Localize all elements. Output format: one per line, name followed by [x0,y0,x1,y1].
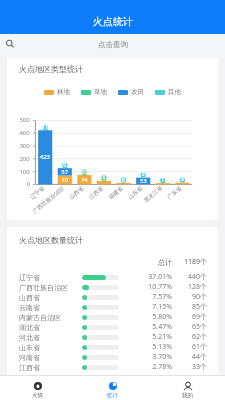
staticText: 统计 [107,392,118,399]
staticText: 点击查询 [98,40,128,49]
staticText: 61个 [179,342,207,352]
staticText: 农田 [131,88,144,96]
button[interactable]: 辽宁省 [7,272,218,282]
staticText: 7.15% [144,302,172,312]
button[interactable]: 河南省 [7,352,218,362]
staticText: 5.80% [144,312,172,322]
staticText: 1189个 [179,257,207,267]
button[interactable]: 河北省 [7,332,218,342]
button[interactable]: 火情 [0,376,75,400]
staticText: 10.77% [144,282,172,292]
button[interactable]: 搜索 [0,34,225,54]
staticText: 火情 [32,392,43,399]
staticText: 90个 [179,292,207,302]
staticText: 江西省 [19,363,40,372]
staticText: 我的 [182,392,193,399]
staticText: 3.70% [144,352,172,362]
staticText: 山西省 [19,293,40,302]
staticText: 广西壮族自治区 [19,283,68,292]
staticText: 5.47% [144,322,172,332]
button[interactable]: 江西省 [7,362,218,372]
staticText: 林地 [57,88,70,96]
button[interactable]: 内蒙古自治区 [7,312,218,322]
button[interactable]: 我的 [150,376,225,400]
staticText: 云南省 [19,303,40,312]
button[interactable]: 广西壮族自治区 [7,282,218,292]
staticText: 火点地区数量统计 [19,235,83,245]
staticText: 69个 [179,312,207,322]
staticText: 5.13% [144,342,172,352]
other: 搜索 [5,39,15,49]
staticText: 2.78% [144,362,172,372]
staticText: 辽宁省 [19,273,40,282]
staticText: 62个 [179,332,207,342]
staticText: 33个 [179,362,207,372]
staticText: 内蒙古自治区 [19,313,61,322]
staticText: 山东省 [19,343,40,352]
staticText: 128个 [179,282,207,292]
staticText: 火点地区类型统计 [19,64,83,74]
button[interactable]: 云南省 [7,302,218,312]
staticText: 其他 [168,88,181,96]
staticText: 河南省 [19,353,40,362]
staticText: 7.57% [144,292,172,302]
button[interactable]: 湖北省 [7,322,218,332]
staticText: 65个 [179,322,207,332]
staticText: 河北省 [19,333,40,342]
staticText: 湖北省 [19,323,40,332]
staticText: 37.01% [144,272,172,282]
staticText: 火点统计 [93,15,133,28]
button[interactable]: 山东省 [7,342,218,352]
staticText: 草地 [94,88,107,96]
button[interactable]: 山西省 [7,292,218,302]
staticText: 总计 [144,258,172,267]
staticText: 85个 [179,302,207,312]
staticText: 440个 [179,272,207,282]
staticText: 44个 [179,352,207,362]
staticText: 5.21% [144,332,172,342]
button[interactable]: 统计 [75,376,150,400]
